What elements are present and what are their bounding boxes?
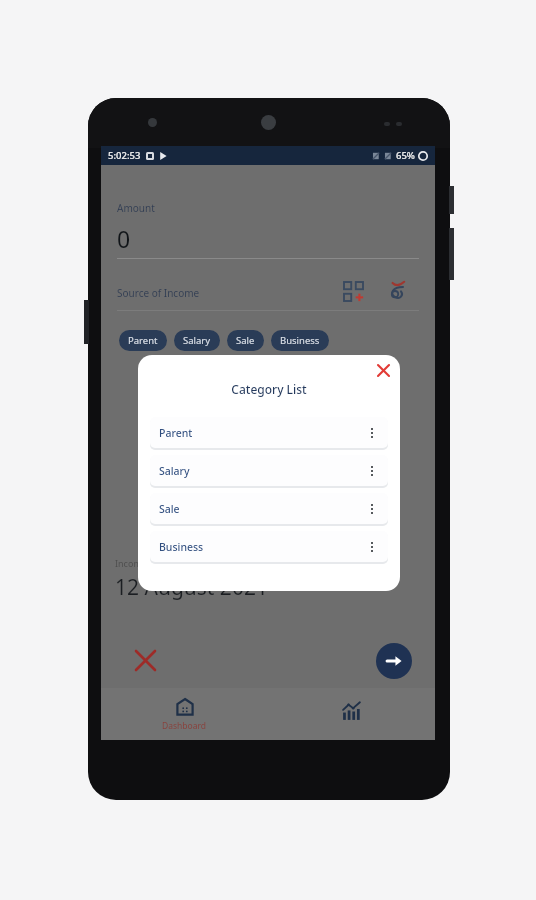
staticText: Income: [115, 557, 147, 569]
button[interactable]: Parent: [119, 330, 167, 351]
button[interactable]: Next: [376, 643, 412, 679]
button[interactable]: Salary: [150, 455, 388, 486]
staticText: Dashboard: [162, 720, 207, 732]
button[interactable]: More options for Salary: [365, 460, 379, 482]
button[interactable]: More options for Parent: [365, 422, 379, 444]
staticText: Category List: [138, 381, 400, 397]
staticText: Salary: [159, 464, 190, 478]
staticText: Business: [280, 334, 320, 347]
button[interactable]: More options for Business: [365, 536, 379, 558]
staticText: Salary: [183, 334, 211, 347]
staticText: 12 August 2021: [115, 573, 268, 602]
staticText: Amount: [117, 201, 155, 215]
staticText: Business: [159, 540, 204, 554]
staticText: Sale: [236, 334, 255, 347]
button[interactable]: Salary: [174, 330, 220, 351]
button[interactable]: Sale: [227, 330, 264, 351]
staticText: 0: [117, 223, 131, 254]
button[interactable]: Cancel: [128, 643, 162, 677]
staticText: Sale: [159, 502, 180, 516]
staticText: Parent: [159, 426, 193, 440]
button[interactable]: Business: [271, 330, 329, 351]
button[interactable]: Parent: [150, 417, 388, 448]
staticText: Source of Income: [117, 286, 200, 300]
button[interactable]: Reports: [268, 688, 435, 740]
staticText: 65%: [396, 149, 415, 162]
button[interactable]: Add category: [339, 277, 367, 305]
button[interactable]: Dashboard: [101, 688, 268, 740]
staticText: 5:02:53: [108, 149, 141, 162]
button[interactable]: Business: [150, 531, 388, 562]
button[interactable]: Attach: [383, 277, 411, 305]
button[interactable]: Close: [372, 359, 394, 381]
button[interactable]: More options for Sale: [365, 498, 379, 520]
staticText: Parent: [128, 334, 158, 347]
button[interactable]: Sale: [150, 493, 388, 524]
